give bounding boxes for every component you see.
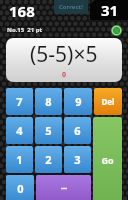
button[interactable]: Minus xyxy=(36,175,91,200)
staticText: 2 xyxy=(45,152,52,167)
button[interactable]: 3 xyxy=(64,146,91,173)
button[interactable]: Del xyxy=(94,88,122,115)
button[interactable]: 8 xyxy=(35,88,62,115)
staticText: 3 xyxy=(74,152,81,167)
button[interactable]: 4 xyxy=(6,117,33,144)
staticText: Del xyxy=(101,96,115,107)
staticText: 168 xyxy=(9,1,35,21)
staticText: 4 xyxy=(16,123,23,138)
button[interactable]: 9 xyxy=(64,88,92,115)
button[interactable]: Go xyxy=(93,117,122,200)
button[interactable]: (5-5)×5 xyxy=(6,38,122,82)
staticText: Correct! xyxy=(59,3,83,11)
staticText: 5 xyxy=(45,123,52,138)
button[interactable]: 2 xyxy=(35,146,62,173)
staticText: 0 xyxy=(62,70,67,80)
staticText: 0 xyxy=(17,181,24,196)
staticText: (5-5)×5 xyxy=(30,40,98,69)
staticText: No.15 21 pt xyxy=(7,26,43,34)
button[interactable]: 5 xyxy=(35,117,62,144)
staticText: 31 xyxy=(101,0,119,20)
staticText: Go xyxy=(101,154,114,166)
staticText: 1 xyxy=(16,152,23,167)
button[interactable]: 6 xyxy=(64,117,91,144)
button[interactable]: 0 xyxy=(6,175,34,200)
staticText: 8 xyxy=(45,94,52,109)
button[interactable]: 1 xyxy=(6,146,33,173)
button[interactable]: Refresh xyxy=(111,25,122,36)
staticText: 9 xyxy=(75,94,82,109)
button[interactable]: Correct! xyxy=(54,0,88,14)
button[interactable]: 7 xyxy=(6,88,33,115)
staticText: 6 xyxy=(74,123,81,138)
staticText: 7 xyxy=(16,94,23,109)
